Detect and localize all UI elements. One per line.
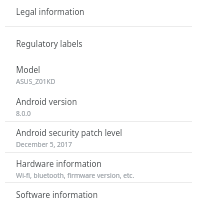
staticText: Wi-fi, bluetooth, firmware version, etc. <box>16 171 135 180</box>
button[interactable]: Android security patch level <box>0 122 200 152</box>
staticText: Android security patch level <box>16 127 123 138</box>
button[interactable]: Model <box>0 58 200 91</box>
staticText: 8.0.0 <box>16 109 31 118</box>
staticText: Model <box>16 64 41 75</box>
staticText: Regulatory labels <box>16 38 83 49</box>
staticText: Software information <box>16 189 98 200</box>
staticText: Hardware information <box>16 158 102 169</box>
button[interactable]: Android version <box>0 91 200 121</box>
button[interactable]: Regulatory labels <box>0 27 200 58</box>
button[interactable]: Hardware information <box>0 153 200 182</box>
staticText: ASUS_Z01KD <box>16 77 56 86</box>
staticText: Android version <box>16 96 77 107</box>
staticText: Legal information <box>16 6 85 17</box>
staticText: December 5, 2017 <box>16 140 73 149</box>
button[interactable]: Software information <box>0 183 200 200</box>
button[interactable]: Legal information <box>0 0 200 26</box>
